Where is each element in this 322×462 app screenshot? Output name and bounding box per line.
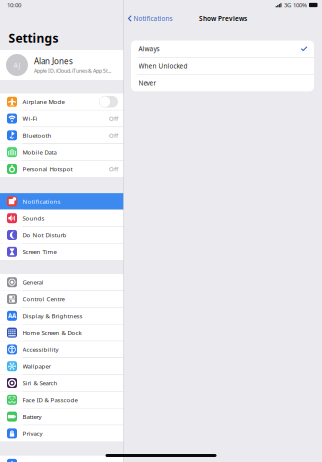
button[interactable]: Sounds [0, 210, 123, 226]
staticText: Siri & Search [22, 379, 57, 387]
button[interactable]: Notifications [0, 193, 123, 209]
button[interactable]: Accessibility [0, 341, 123, 358]
staticText: Notifications [133, 14, 172, 23]
button[interactable]: Face ID & Passcode [0, 392, 123, 408]
staticText: Notifications [22, 197, 60, 205]
button[interactable]: AA [0, 308, 123, 324]
button[interactable]: Wallpaper [0, 358, 123, 374]
staticText: Show Previews [199, 14, 247, 23]
staticText: Mobile Data [22, 148, 56, 156]
staticText: 100% [293, 1, 307, 9]
button[interactable]: Airplane Mode [0, 93, 123, 110]
button[interactable]: Control Centre [0, 291, 123, 307]
staticText: Personal Hotspot [22, 165, 72, 173]
staticText: AA [8, 312, 16, 320]
staticText: Face ID & Passcode [22, 396, 77, 404]
button[interactable]: Bluetooth [0, 127, 123, 143]
staticText: Wallpaper [22, 362, 50, 370]
button[interactable]: AJ [0, 50, 123, 80]
button[interactable]: Always [131, 40, 314, 57]
button[interactable]: When Unlocked [131, 57, 314, 74]
staticText: AJ [13, 60, 20, 70]
staticText: Never [138, 79, 156, 87]
button[interactable]: Personal Hotspot [0, 161, 123, 177]
button[interactable]: Screen Time [0, 243, 123, 260]
staticText: Control Centre [22, 295, 64, 303]
staticText: Off [109, 131, 118, 139]
staticText: 3G [284, 1, 291, 9]
button[interactable]: General [0, 274, 123, 290]
staticText: Display & Brightness [22, 312, 82, 320]
button[interactable]: Battery [0, 408, 123, 425]
staticText: Apple ID, iCloud, iTunes & App St... [34, 67, 111, 74]
button[interactable]: Siri & Search [0, 375, 123, 391]
button[interactable]: Notifications [124, 11, 176, 26]
button[interactable]: Privacy [0, 425, 123, 442]
button[interactable]: Do Not Disturb [0, 227, 123, 243]
button[interactable]: Home Screen & Dock [0, 324, 123, 341]
staticText: Sounds [22, 214, 44, 222]
staticText: 10:00 [7, 1, 21, 9]
button[interactable]: iTunes & App Store [0, 456, 123, 462]
staticText: Home Screen & Dock [22, 329, 81, 337]
staticText: Alan Jones [34, 56, 73, 66]
staticText: Off [109, 165, 118, 173]
staticText: Wi-Fi [22, 114, 37, 122]
staticText: Off [109, 114, 118, 122]
staticText: Bluetooth [22, 131, 51, 139]
button[interactable]: Mobile Data [0, 144, 123, 160]
staticText: Privacy [22, 429, 42, 437]
staticText: Always [138, 45, 159, 53]
staticText: Accessibility [22, 345, 58, 353]
staticText: Screen Time [22, 248, 56, 256]
button[interactable]: Wi-Fi [0, 110, 123, 127]
staticText: Do Not Disturb [22, 231, 66, 239]
staticText: When Unlocked [138, 62, 187, 70]
staticText: General [22, 278, 43, 286]
staticText: Airplane Mode [22, 98, 64, 106]
staticText: Settings [8, 30, 58, 46]
staticText: Battery [22, 413, 41, 421]
button[interactable]: Never [131, 75, 314, 91]
